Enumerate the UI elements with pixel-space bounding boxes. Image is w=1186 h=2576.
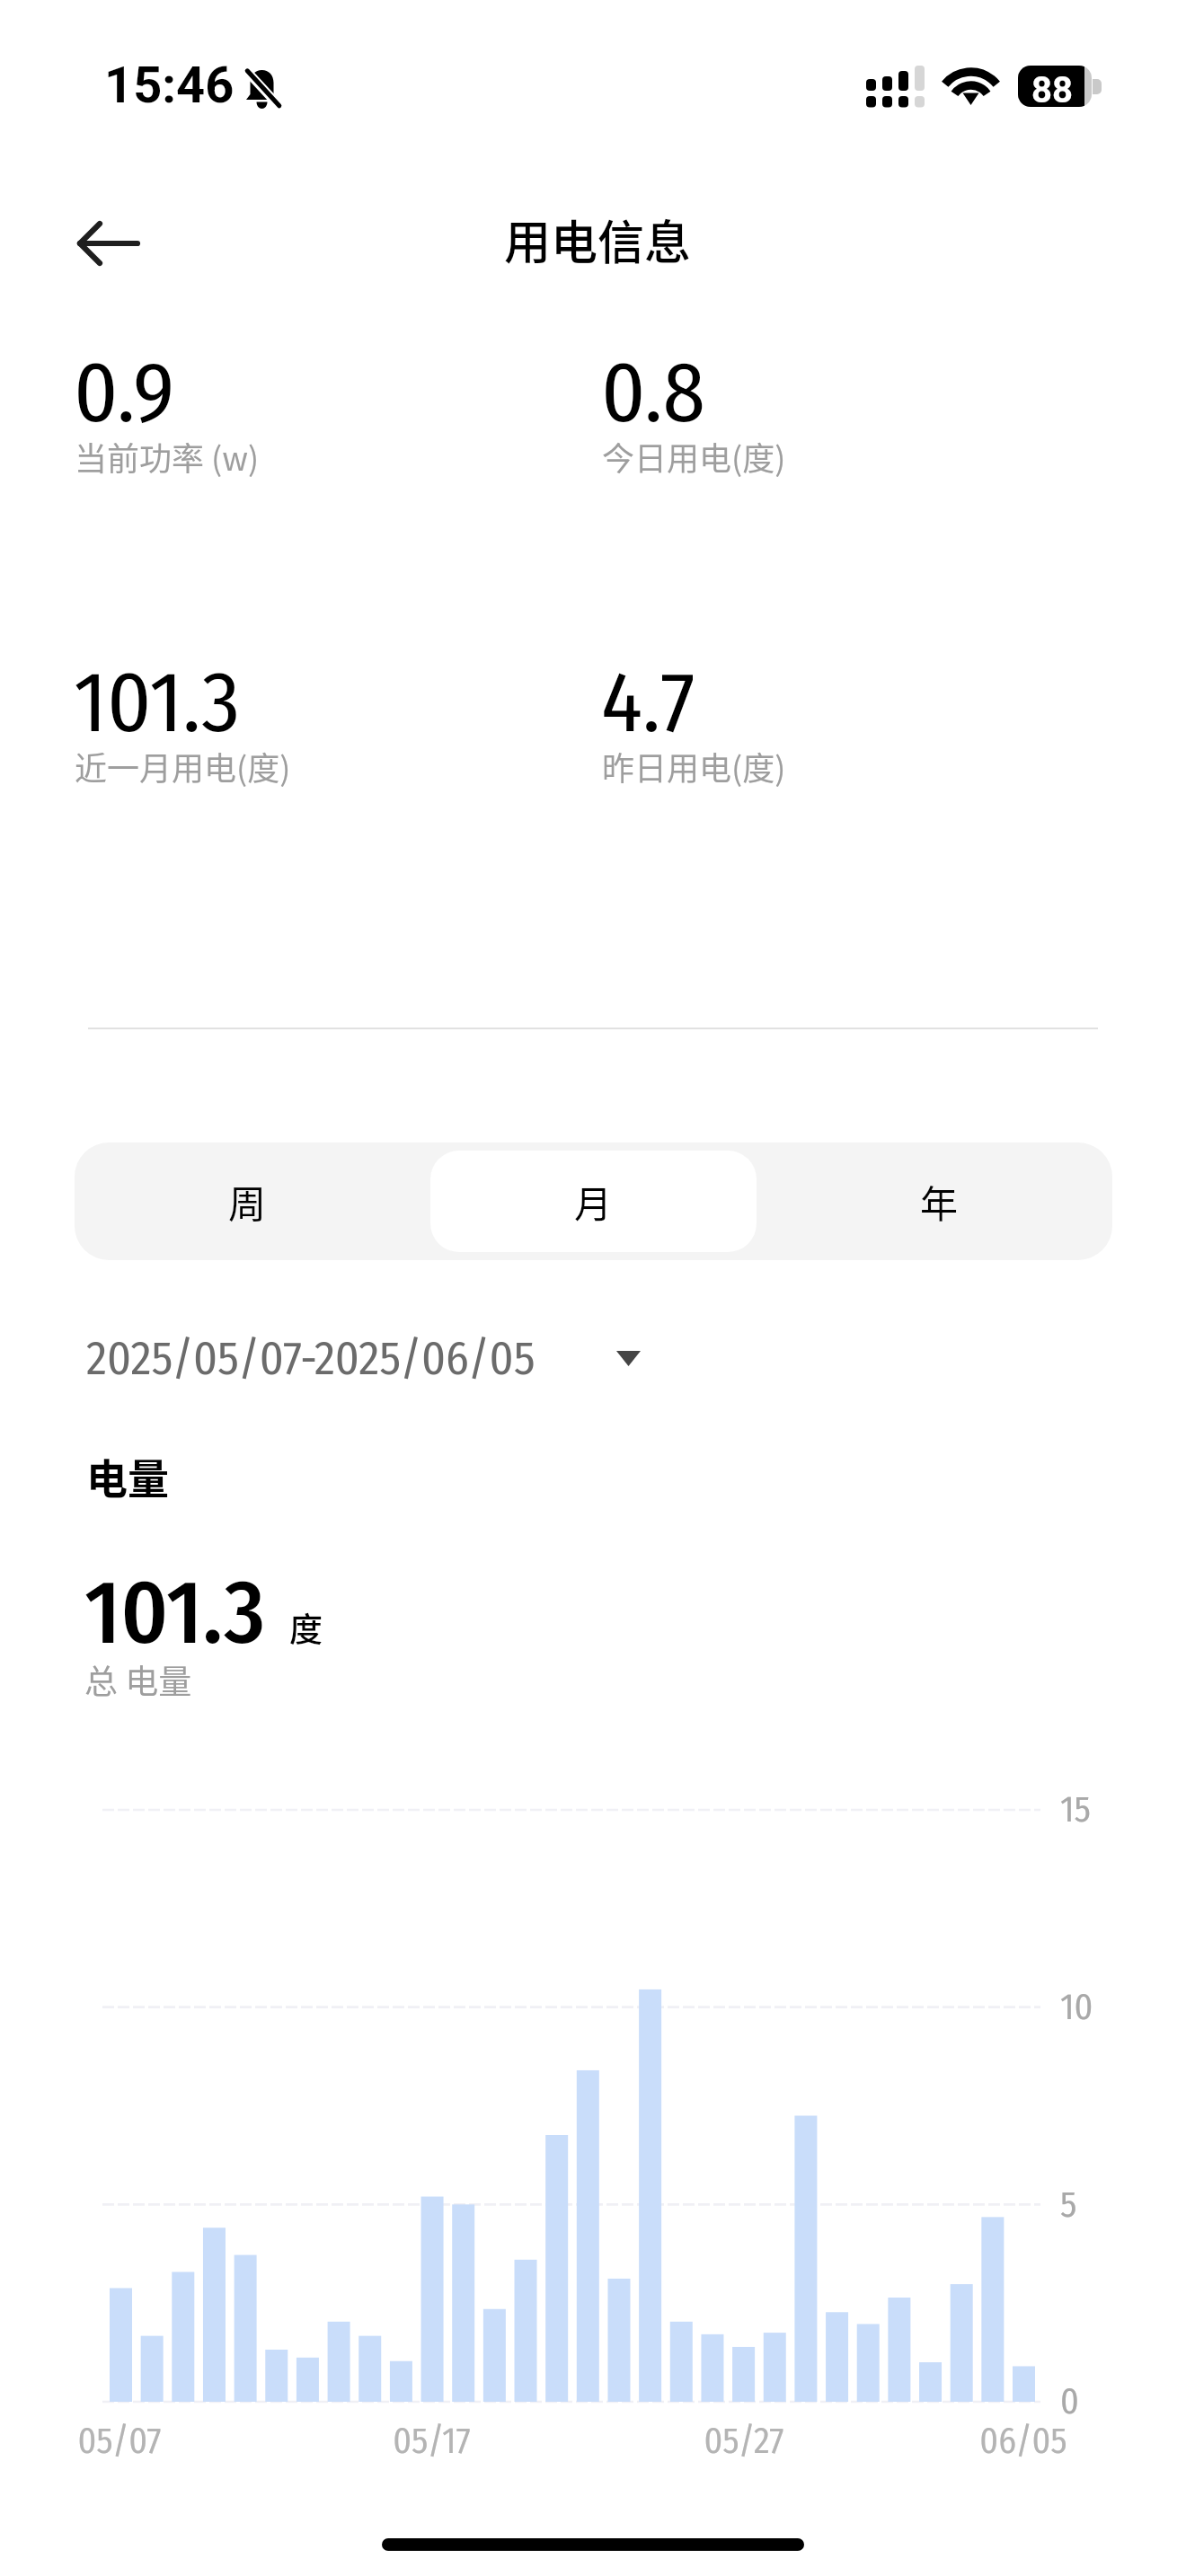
staticText: 0 <box>1060 2380 1079 2423</box>
staticText: 昨日用电(度) <box>602 743 786 790</box>
button[interactable]: 2025/05/07-2025/06/05 <box>86 1330 641 1386</box>
staticText: 15 <box>1060 1788 1091 1831</box>
button[interactable]: 月 <box>430 1151 757 1252</box>
staticText: 4.7 <box>601 651 695 754</box>
staticText: 0.8 <box>601 341 705 444</box>
staticText: 今日用电(度) <box>602 433 786 480</box>
button[interactable]: 周 <box>84 1151 411 1252</box>
staticText: 05/27 <box>704 2420 784 2463</box>
staticText: 101.3 <box>84 1559 265 1666</box>
staticText: 2025/05/07-2025/06/05 <box>86 1330 535 1386</box>
staticText: 15:46 <box>104 56 235 115</box>
button[interactable]: 年 <box>776 1151 1102 1252</box>
staticText: 总 电量 <box>84 1655 192 1704</box>
staticText: 近一月用电(度) <box>75 743 291 790</box>
staticText: 10 <box>1060 1986 1093 2029</box>
staticText: 度 <box>289 1603 323 1652</box>
staticText: 5 <box>1060 2183 1077 2227</box>
staticText: 月 <box>574 1174 613 1229</box>
staticText: 当前功率 (w) <box>75 433 260 480</box>
staticText: 周 <box>228 1174 267 1229</box>
staticText: 101.3 <box>74 651 241 754</box>
staticText: 05/07 <box>77 2420 162 2463</box>
staticText: 0.9 <box>74 341 175 444</box>
staticText: 电量 <box>86 1446 169 1506</box>
staticText: 年 <box>920 1174 959 1229</box>
staticText: 06/05 <box>979 2420 1067 2463</box>
staticText: 05/17 <box>393 2420 471 2463</box>
button[interactable]: Back <box>59 192 160 293</box>
staticText: 88 <box>1031 69 1073 107</box>
staticText: 用电信息 <box>504 206 692 273</box>
